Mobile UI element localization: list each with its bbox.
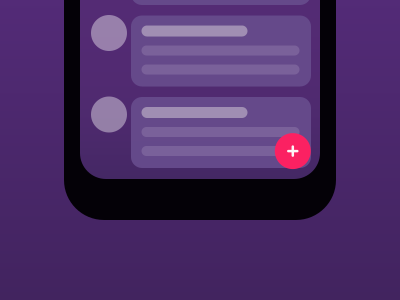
button[interactable] [80, 97, 320, 168]
button[interactable] [80, 0, 320, 5]
button[interactable]: Add [275, 133, 311, 169]
button[interactable] [80, 15, 320, 86]
